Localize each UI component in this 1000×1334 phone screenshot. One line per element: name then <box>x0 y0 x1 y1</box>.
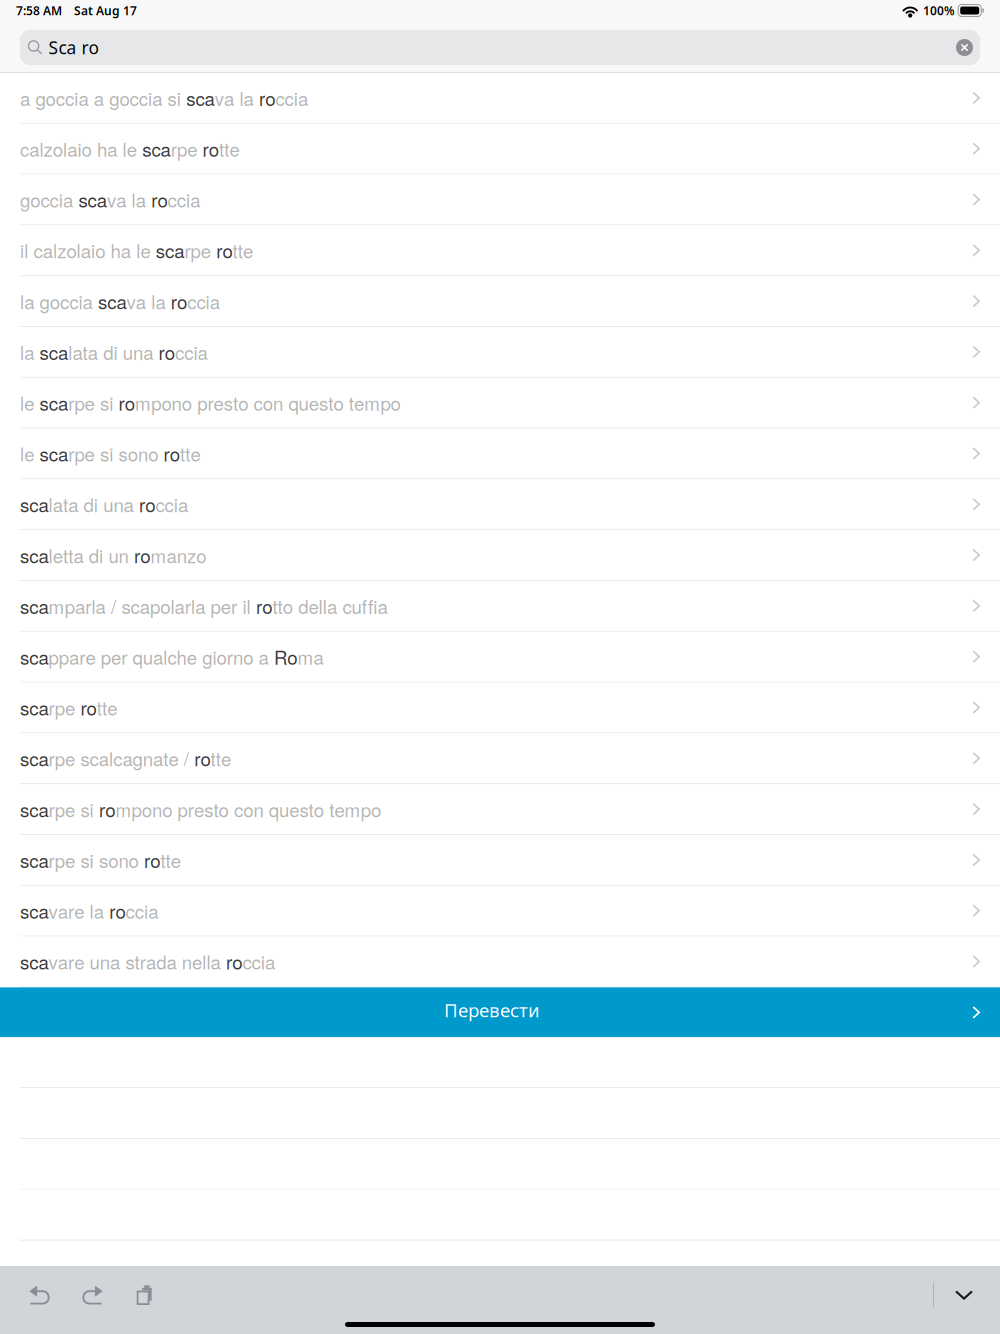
button[interactable]: goccia scava la roccia <box>0 175 1000 225</box>
button[interactable]: Hide keyboard <box>946 1273 982 1317</box>
button[interactable]: Undo <box>16 1273 66 1317</box>
staticText: scavare la roccia <box>20 897 158 924</box>
button[interactable]: calzolaio ha le scarpe rotte <box>0 124 1000 175</box>
button[interactable]: la goccia scava la roccia <box>0 276 1000 327</box>
button[interactable]: le scarpe si rompono presto con questo t… <box>0 378 1000 429</box>
staticText: scaletta di un romanzo <box>20 542 206 568</box>
staticText: le scarpe si sono rotte <box>20 440 200 467</box>
staticText: il calzolaio ha le scarpe rotte <box>20 237 253 264</box>
button[interactable]: a goccia a goccia si scava la roccia <box>0 73 1000 124</box>
button[interactable]: scaletta di un romanzo <box>0 530 1000 581</box>
button[interactable]: Redo <box>66 1273 116 1317</box>
staticText: a goccia a goccia si scava la roccia <box>20 84 308 111</box>
staticText: calzolaio ha le scarpe rotte <box>20 135 239 162</box>
button[interactable]: Clear search text <box>953 36 976 59</box>
staticText: Sat Aug 17 <box>74 2 137 18</box>
button[interactable]: la scalata di una roccia <box>0 327 1000 378</box>
button[interactable]: Перевести <box>0 987 1000 1037</box>
staticText: la goccia scava la roccia <box>20 288 220 314</box>
staticText: scappare per qualche giorno a Roma <box>20 643 323 670</box>
staticText: Перевести <box>444 997 540 1022</box>
button[interactable]: scarpe scalcagnate / rotte <box>0 733 1000 784</box>
staticText: goccia scava la roccia <box>20 186 200 213</box>
button[interactable]: scarpe rotte <box>0 683 1000 733</box>
staticText: 100% <box>923 2 955 18</box>
button[interactable]: scamparla / scapolarla per il rotto dell… <box>0 581 1000 632</box>
staticText: la scalata di una roccia <box>20 338 207 365</box>
button[interactable]: scavare la roccia <box>0 886 1000 937</box>
staticText: scarpe si rompono presto con questo temp… <box>20 796 381 822</box>
staticText: le scarpe si rompono presto con questo t… <box>20 389 400 416</box>
button[interactable]: le scarpe si sono rotte <box>0 429 1000 479</box>
button[interactable]: scalata di una roccia <box>0 479 1000 530</box>
button[interactable]: scarpe si sono rotte <box>0 835 1000 886</box>
staticText: scarpe scalcagnate / rotte <box>20 745 231 772</box>
button[interactable]: scarpe si rompono presto con questo temp… <box>0 784 1000 835</box>
button[interactable]: Paste <box>116 1273 171 1317</box>
staticText: scamparla / scapolarla per il rotto dell… <box>20 592 387 619</box>
staticText: scarpe rotte <box>20 694 117 721</box>
button[interactable]: scavare una strada nella roccia <box>0 937 1000 987</box>
button[interactable]: scappare per qualche giorno a Roma <box>0 632 1000 683</box>
staticText: scarpe si sono rotte <box>20 846 181 873</box>
button[interactable]: il calzolaio ha le scarpe rotte <box>0 225 1000 276</box>
staticText: scalata di una roccia <box>20 491 188 518</box>
staticText: 7:58 AM <box>16 2 62 18</box>
staticText: Sca ro <box>48 36 98 59</box>
staticText: scavare una strada nella roccia <box>20 948 275 975</box>
